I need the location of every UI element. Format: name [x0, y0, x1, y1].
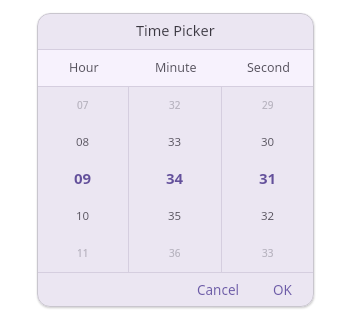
- staticText: 08: [76, 134, 90, 150]
- staticText: 09: [74, 168, 92, 188]
- button[interactable]: 31: [222, 161, 314, 198]
- button[interactable]: Minute: [130, 50, 222, 86]
- staticText: Second: [247, 59, 290, 76]
- staticText: 33: [262, 246, 274, 260]
- staticText: Time Picker: [136, 20, 215, 40]
- button[interactable]: 09: [37, 161, 128, 198]
- button[interactable]: 32: [129, 87, 221, 124]
- staticText: 10: [76, 208, 90, 224]
- button[interactable]: 29: [222, 87, 314, 124]
- staticText: Cancel: [197, 281, 240, 299]
- button[interactable]: 30: [222, 124, 314, 161]
- button[interactable]: 10: [37, 198, 128, 235]
- button[interactable]: Second: [222, 50, 314, 86]
- button[interactable]: 35: [129, 198, 221, 235]
- staticText: 32: [261, 208, 275, 224]
- button[interactable]: 08: [37, 124, 128, 161]
- staticText: OK: [273, 281, 292, 299]
- staticText: 33: [168, 134, 182, 150]
- staticText: 34: [166, 168, 184, 188]
- staticText: 31: [259, 168, 277, 188]
- button[interactable]: 36: [129, 235, 221, 272]
- button[interactable]: 11: [37, 235, 128, 272]
- staticText: Minute: [155, 59, 197, 76]
- staticText: 07: [77, 98, 89, 112]
- staticText: 30: [261, 134, 275, 150]
- staticText: 36: [169, 246, 181, 260]
- staticText: Hour: [69, 59, 99, 76]
- button[interactable]: 07: [37, 87, 128, 124]
- staticText: 11: [77, 246, 89, 260]
- button[interactable]: Hour: [37, 50, 130, 86]
- button[interactable]: OK: [263, 275, 302, 305]
- staticText: 32: [169, 98, 181, 112]
- button[interactable]: 32: [222, 198, 314, 235]
- button[interactable]: 33: [129, 124, 221, 161]
- staticText: 35: [168, 208, 182, 224]
- staticText: 29: [262, 98, 274, 112]
- button[interactable]: 34: [129, 161, 221, 198]
- button[interactable]: 33: [222, 235, 314, 272]
- button[interactable]: Cancel: [187, 275, 250, 305]
